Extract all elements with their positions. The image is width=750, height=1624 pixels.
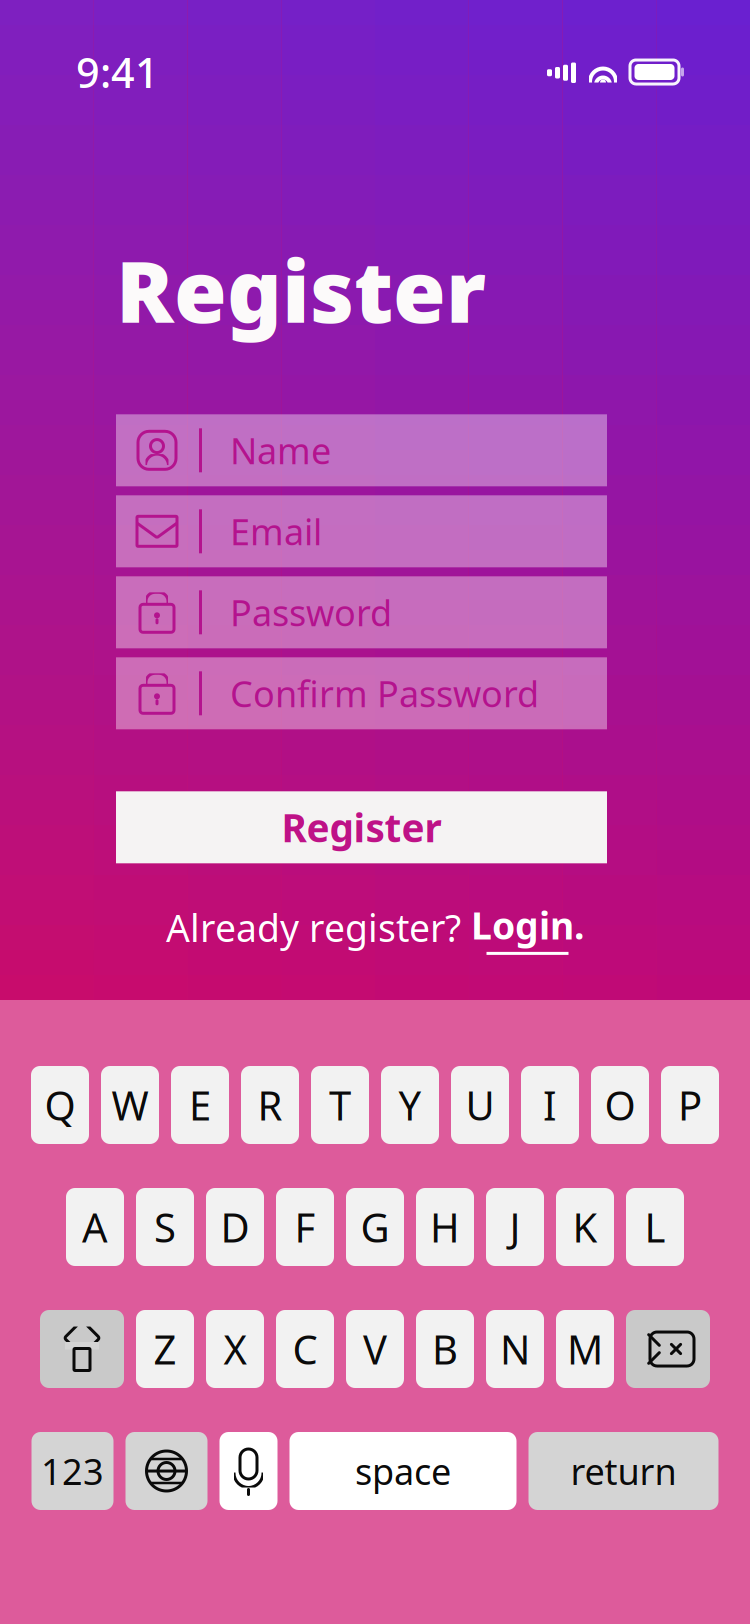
button[interactable]: A — [66, 1188, 124, 1266]
staticText: Y — [398, 1078, 421, 1131]
button[interactable]: Confirm Password — [116, 657, 607, 729]
button[interactable]: I — [521, 1066, 579, 1144]
button[interactable]: G — [346, 1188, 404, 1266]
staticText: Email — [230, 507, 322, 555]
button[interactable]: S — [136, 1188, 194, 1266]
staticText: K — [572, 1200, 597, 1253]
button[interactable]: X — [206, 1310, 264, 1388]
button[interactable]: M — [556, 1310, 614, 1388]
staticText: return — [570, 1447, 676, 1495]
button[interactable]: Register — [116, 791, 607, 863]
staticText: V — [363, 1322, 387, 1375]
staticText: Register — [281, 802, 441, 853]
staticText: C — [292, 1322, 317, 1375]
button[interactable]: Password — [116, 576, 607, 648]
button[interactable]: J — [486, 1188, 544, 1266]
button[interactable]: U — [451, 1066, 509, 1144]
staticText: Password — [230, 588, 392, 636]
button[interactable]: Z — [136, 1310, 194, 1388]
staticText: N — [500, 1322, 530, 1375]
button[interactable]: N — [486, 1310, 544, 1388]
staticText: Login. — [471, 900, 584, 950]
button[interactable]: return — [528, 1432, 718, 1510]
staticText: I — [543, 1078, 557, 1131]
staticText: H — [430, 1200, 460, 1253]
staticText: Register — [116, 233, 486, 346]
button[interactable]: B — [416, 1310, 474, 1388]
button[interactable]: Dictate — [219, 1432, 277, 1510]
staticText: Q — [44, 1078, 75, 1131]
staticText: L — [644, 1200, 665, 1253]
staticText: P — [678, 1078, 702, 1131]
staticText: Already register? — [166, 903, 471, 952]
button[interactable]: R — [241, 1066, 299, 1144]
staticText: 9:41 — [76, 45, 159, 99]
staticText: U — [465, 1078, 494, 1131]
button[interactable]: Delete — [626, 1310, 710, 1388]
button[interactable]: Shift — [40, 1310, 124, 1388]
button[interactable]: Y — [381, 1066, 439, 1144]
button[interactable]: Name — [116, 414, 607, 486]
button[interactable]: L — [626, 1188, 684, 1266]
button[interactable]: P — [661, 1066, 719, 1144]
staticText: S — [154, 1200, 176, 1253]
button[interactable]: D — [206, 1188, 264, 1266]
button[interactable]: 123 — [31, 1432, 113, 1510]
button[interactable]: Email — [116, 495, 607, 567]
staticText: X — [223, 1322, 246, 1375]
button[interactable]: E — [171, 1066, 229, 1144]
staticText: T — [329, 1078, 351, 1131]
staticText: D — [220, 1200, 249, 1253]
staticText: A — [82, 1200, 108, 1253]
button[interactable]: T — [311, 1066, 369, 1144]
staticText: J — [509, 1200, 520, 1253]
button[interactable]: space — [289, 1432, 516, 1510]
staticText: M — [567, 1322, 603, 1375]
staticText: F — [294, 1200, 315, 1253]
button[interactable]: Next keyboard — [125, 1432, 207, 1510]
button[interactable]: K — [556, 1188, 614, 1266]
staticText: G — [360, 1200, 389, 1253]
staticText: space — [355, 1447, 451, 1495]
button[interactable]: W — [101, 1066, 159, 1144]
staticText: 123 — [41, 1447, 104, 1495]
staticText: R — [257, 1078, 282, 1131]
button[interactable]: V — [346, 1310, 404, 1388]
staticText: Confirm Password — [230, 669, 539, 717]
staticText: E — [189, 1078, 211, 1131]
button[interactable]: C — [276, 1310, 334, 1388]
button[interactable]: H — [416, 1188, 474, 1266]
button[interactable]: Q — [31, 1066, 89, 1144]
staticText: W — [111, 1078, 148, 1131]
button[interactable]: O — [591, 1066, 649, 1144]
staticText: Name — [230, 426, 331, 474]
button[interactable]: F — [276, 1188, 334, 1266]
button[interactable]: Already register? — [166, 900, 584, 955]
staticText: B — [432, 1322, 458, 1375]
staticText: Z — [153, 1322, 176, 1375]
staticText: O — [604, 1078, 635, 1131]
